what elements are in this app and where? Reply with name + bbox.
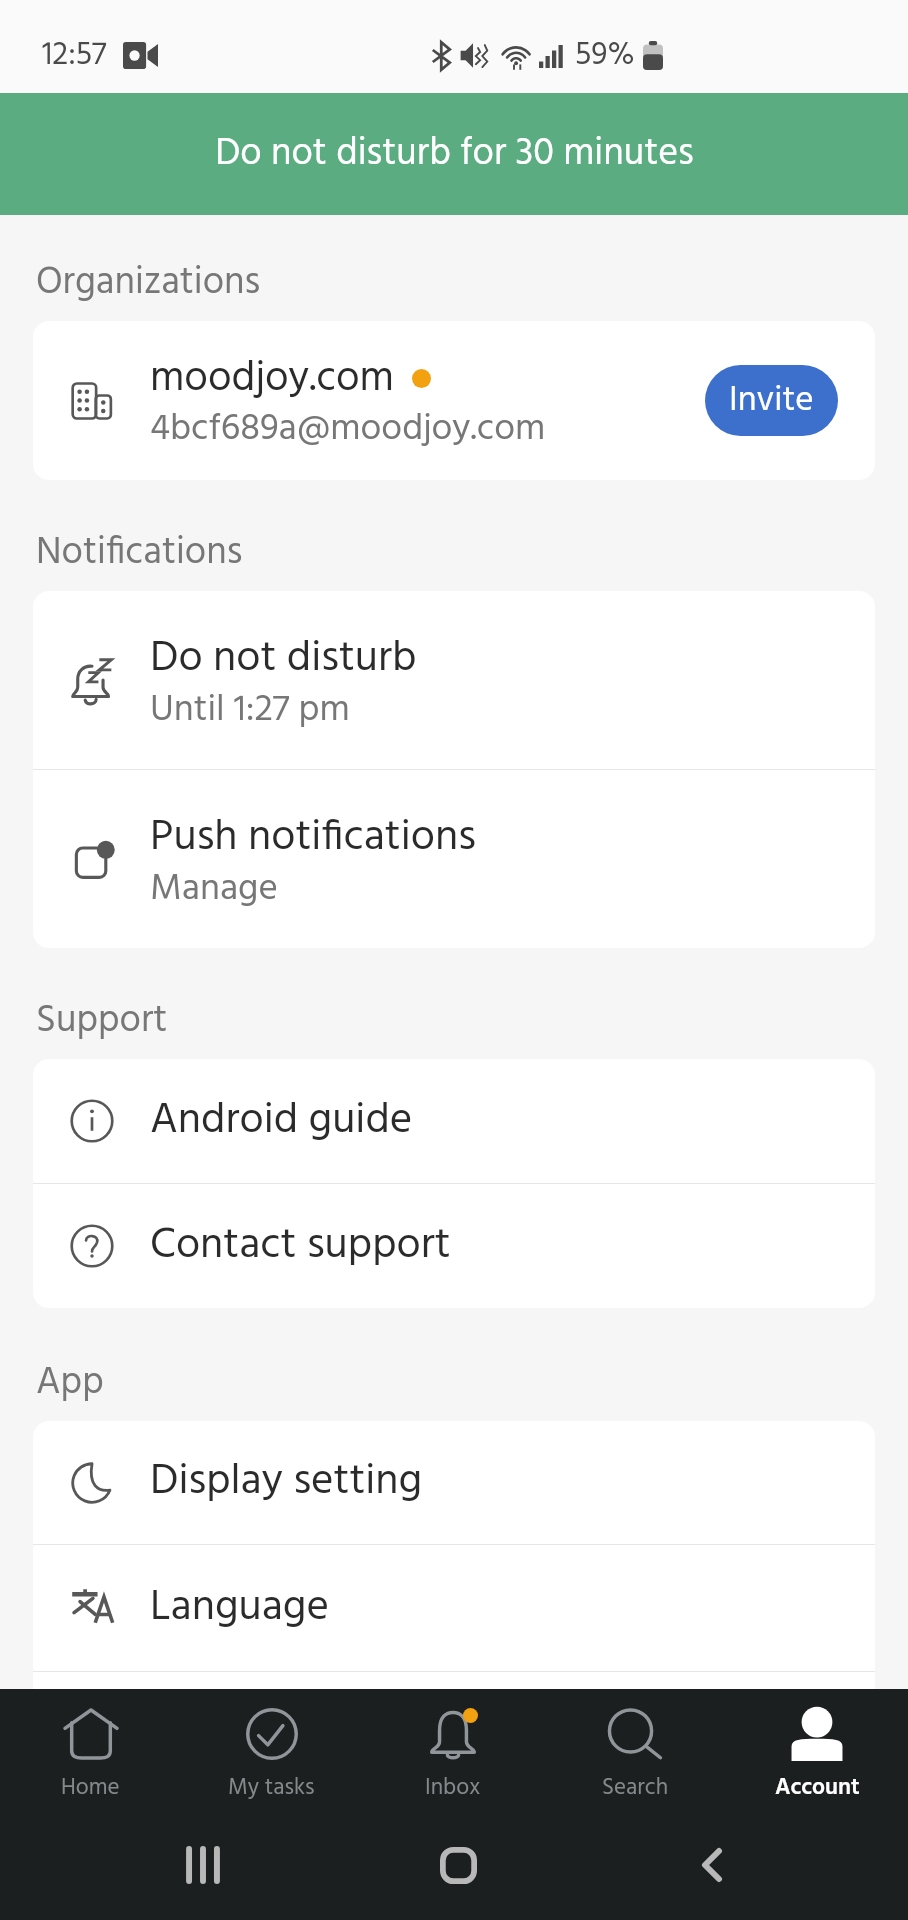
button[interactable]: Do not disturb (33, 591, 875, 769)
staticText: Until 1:27 pm (150, 681, 350, 740)
staticText: moodjoy.com (150, 346, 394, 413)
staticText: App (36, 1353, 104, 1414)
staticText: Support (36, 991, 168, 1052)
staticText: 12:57 (42, 30, 107, 81)
staticText: Language (150, 1574, 329, 1643)
button[interactable]: Theme (33, 1672, 875, 1796)
staticText: Search (602, 1770, 669, 1807)
staticText: Theme (150, 1700, 275, 1769)
button[interactable]: My tasks (181, 1689, 362, 1810)
button[interactable]: Do not disturb for 30 minutes (0, 93, 908, 215)
button[interactable]: Account (726, 1689, 908, 1810)
button[interactable]: Home (413, 1820, 503, 1910)
staticText: Android guide (150, 1087, 413, 1156)
staticText: 59% (575, 30, 635, 81)
button[interactable]: Invite (705, 365, 838, 436)
button[interactable]: Push notifications (33, 770, 875, 948)
button[interactable]: Language (33, 1545, 875, 1671)
button[interactable]: Recent apps (158, 1820, 248, 1910)
button[interactable]: Inbox (362, 1689, 544, 1810)
staticText: Push notifications (150, 804, 476, 873)
staticText: Do not disturb (150, 625, 417, 694)
staticText: Home (61, 1770, 120, 1807)
staticText: Organizations (36, 253, 261, 314)
staticText: Display setting (150, 1448, 423, 1517)
staticText: My tasks (228, 1770, 315, 1807)
staticText: Manage (150, 860, 278, 919)
staticText: Notifications (36, 523, 243, 584)
staticText: Inbox (425, 1770, 481, 1807)
button[interactable]: Home (0, 1689, 181, 1810)
button[interactable]: moodjoy.com (33, 321, 875, 480)
staticText: Contact support (150, 1212, 451, 1281)
button[interactable]: Back (667, 1820, 757, 1910)
button[interactable]: Contact support (33, 1184, 875, 1308)
button[interactable]: Search (544, 1689, 726, 1810)
staticText: Do not disturb for 30 minutes (215, 124, 694, 185)
button[interactable]: Android guide (33, 1059, 875, 1183)
staticText: Account (775, 1770, 860, 1807)
staticText: Invite (729, 373, 814, 429)
staticText: 4bcf689a@moodjoy.com (150, 400, 546, 459)
button[interactable]: Display setting (33, 1421, 875, 1544)
